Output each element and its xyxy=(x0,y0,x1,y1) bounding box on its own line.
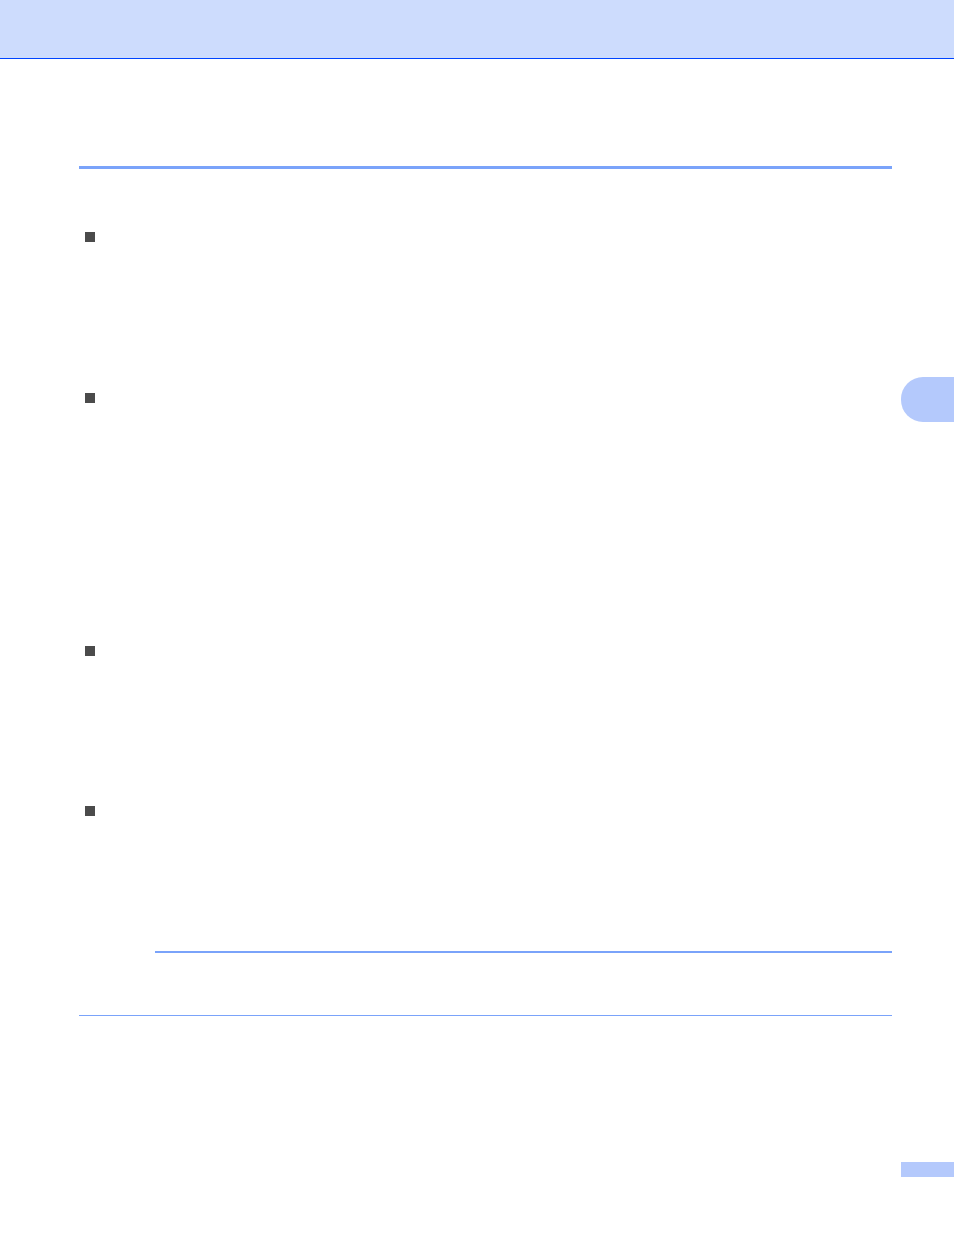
button[interactable]: Section tab xyxy=(901,377,954,422)
